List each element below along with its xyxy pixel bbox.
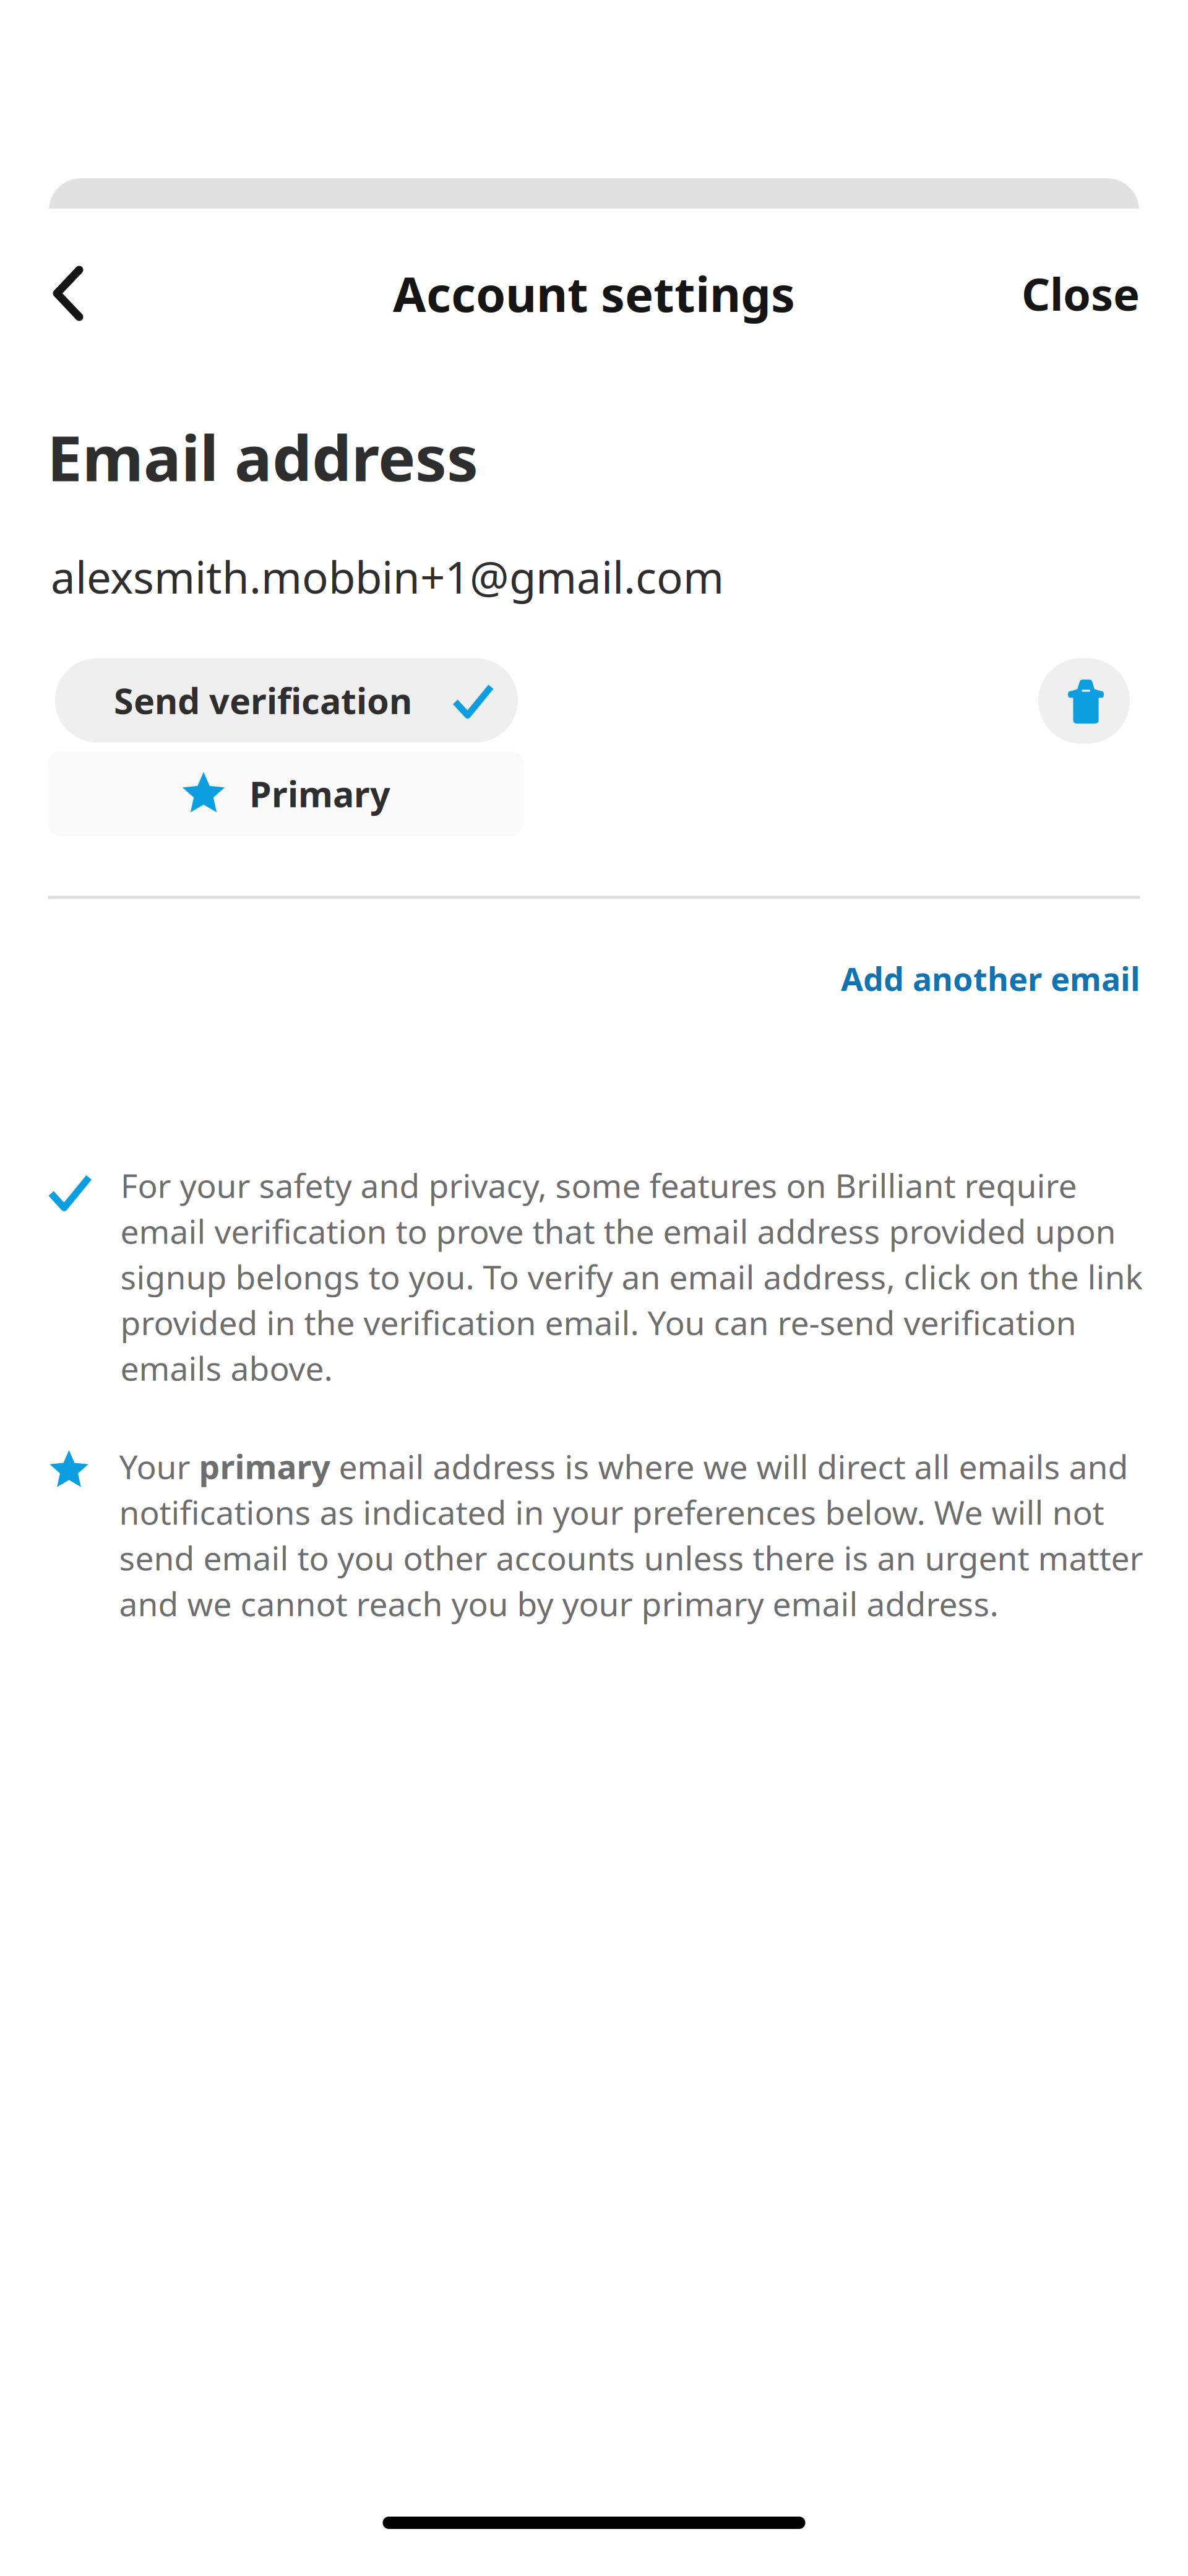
staticText: Email address (47, 415, 478, 499)
button[interactable]: Delete email address (1038, 658, 1130, 744)
staticText: Send verification (114, 677, 412, 724)
button[interactable]: Send verification (55, 658, 518, 742)
staticText: Account settings (393, 262, 795, 325)
button[interactable]: Add another email (816, 948, 1140, 1009)
staticText: For your safety and privacy, some featur… (120, 1163, 1143, 1390)
staticText: Add another email (841, 957, 1140, 1000)
staticText: Your primary email address is where we w… (119, 1444, 1143, 1625)
button[interactable]: Back (0, 244, 112, 342)
staticText: Primary (249, 770, 390, 817)
button[interactable]: Primary (48, 751, 523, 836)
staticText: Close (1022, 264, 1140, 323)
staticText: alexsmith.mobbin+1@gmail.com (51, 548, 724, 606)
button[interactable]: Close (994, 243, 1188, 344)
